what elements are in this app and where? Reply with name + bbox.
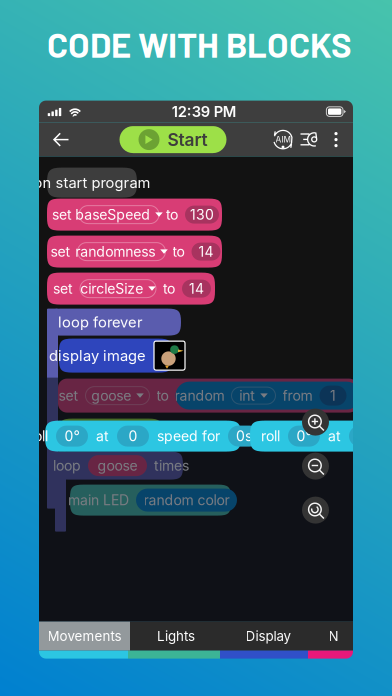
staticText: baseSpeed [75,206,150,223]
staticText: randomness [75,243,155,260]
staticText: main LED [68,492,129,508]
staticText: goose [91,387,131,404]
staticText: 14 [189,280,204,297]
staticText: 0 [128,428,137,444]
staticText: circleSize [80,280,143,297]
staticText: 130 [190,206,214,223]
button[interactable]: Reset zoom [302,497,329,524]
staticText: on start program [33,174,150,191]
button[interactable]: Aim [269,123,297,157]
staticText: 0s [236,428,252,444]
button[interactable]: Zoom out [302,453,329,480]
staticText: Movements [47,628,121,644]
staticText: 0° [296,428,311,444]
staticText: to [163,280,175,297]
staticText: AIM [275,135,290,145]
staticText: Lights [157,628,195,644]
button[interactable]: roll [250,421,392,452]
staticText: set [58,387,78,404]
staticText: loop [53,457,81,474]
staticText: set [52,206,72,223]
staticText: roll [261,428,280,444]
staticText: at [96,428,109,444]
staticText: to [156,387,168,404]
staticText: times [154,457,189,474]
staticText: to [166,206,178,223]
button[interactable]: Display [222,622,314,651]
staticText: random [174,387,224,404]
staticText: N [328,628,338,644]
staticText: speed for [157,428,220,444]
button[interactable]: Movements [39,622,130,651]
button[interactable]: Sensors [297,123,325,157]
staticText: 12:39 PM [172,103,237,120]
staticText: 0° [64,428,79,444]
staticText: int [239,387,255,404]
button[interactable]: Back [45,124,77,156]
button[interactable]: roll [45,421,241,452]
staticText: Start [167,129,207,150]
staticText: set [53,280,73,297]
staticText: random color [143,492,229,508]
staticText: to [172,243,184,260]
staticText: 1 [330,387,336,404]
staticText: normalizeSpeed [70,424,185,442]
staticText: Display [245,628,290,644]
staticText: goose [97,457,137,474]
staticText: at [328,428,341,444]
button[interactable]: More options [325,123,347,157]
staticText: from [282,387,312,404]
staticText: CODE WITH BLOCKS [47,23,352,65]
button[interactable]: Zoom in [302,409,329,436]
staticText: roll [29,428,48,444]
staticText: 14 [198,243,213,260]
staticText: loop forever [58,313,143,331]
button[interactable]: Start [119,126,226,153]
button[interactable]: N [314,622,353,651]
staticText: set [50,243,70,260]
button[interactable]: Lights [130,622,222,651]
staticText: display image [49,347,146,364]
